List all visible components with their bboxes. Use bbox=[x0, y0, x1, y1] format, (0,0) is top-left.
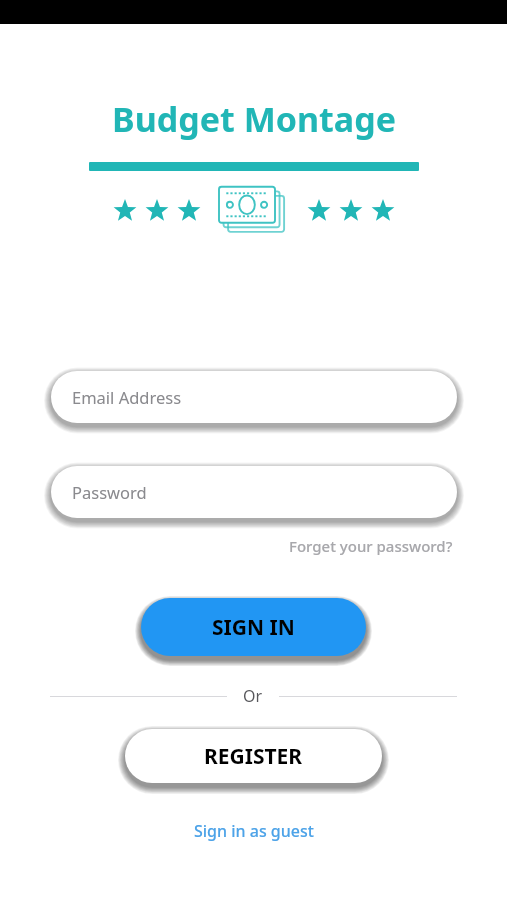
staticText: Email Address bbox=[72, 386, 182, 408]
staticText: SIGN IN bbox=[212, 613, 295, 642]
button[interactable]: Sign in as guest bbox=[186, 816, 322, 846]
button[interactable]: Email Address bbox=[51, 371, 457, 423]
staticText: Password bbox=[72, 481, 147, 503]
staticText: Sign in as guest bbox=[194, 820, 314, 842]
button[interactable]: Password bbox=[51, 466, 457, 518]
button[interactable]: REGISTER bbox=[125, 729, 382, 783]
staticText: Or bbox=[243, 685, 263, 707]
staticText: Budget Montage bbox=[112, 96, 396, 142]
staticText: Forget your password? bbox=[289, 536, 453, 556]
button[interactable]: SIGN IN bbox=[141, 598, 366, 656]
staticText: REGISTER bbox=[204, 742, 303, 771]
button[interactable]: Forget your password? bbox=[285, 532, 457, 560]
